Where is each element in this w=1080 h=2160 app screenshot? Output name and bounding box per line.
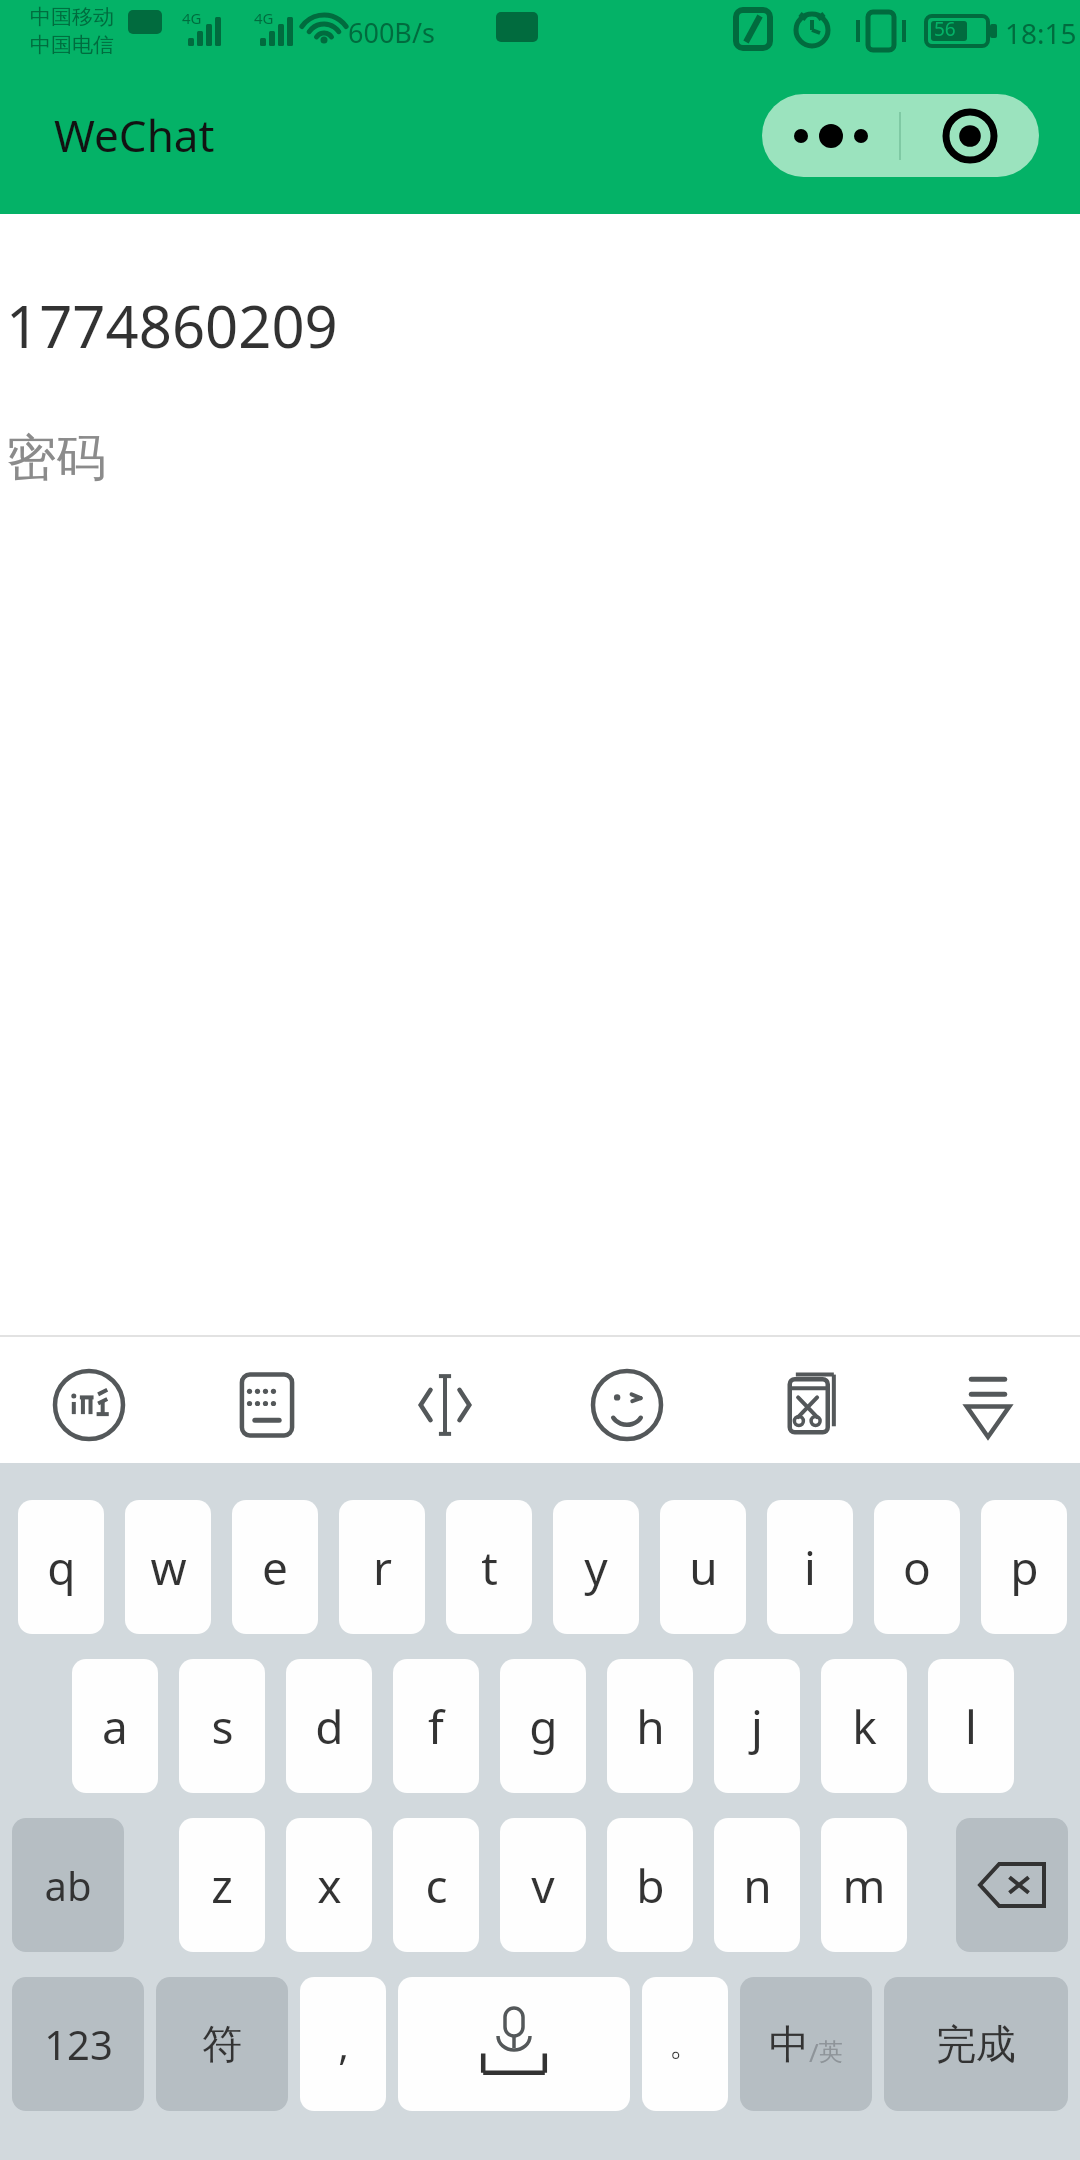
button[interactable]: 。 [642, 1977, 728, 2111]
staticText: l [965, 1695, 977, 1758]
button[interactable]: a [72, 1659, 158, 1793]
staticText: z [211, 1854, 233, 1917]
staticText: h [636, 1695, 665, 1758]
button[interactable]: , [300, 1977, 386, 2111]
button[interactable]: h [607, 1659, 693, 1793]
staticText: j [751, 1695, 763, 1758]
button[interactable]: 中 [740, 1977, 872, 2111]
staticText: WeChat [54, 105, 215, 165]
button[interactable]: 123 [12, 1977, 144, 2111]
staticText: 中 [769, 2019, 809, 2069]
staticText: 密码 [6, 427, 106, 490]
button[interactable]: l [928, 1659, 1014, 1793]
button[interactable]: x [286, 1818, 372, 1952]
button[interactable]: Emoji [571, 1349, 683, 1461]
staticText: k [852, 1695, 877, 1758]
button[interactable]: y [553, 1500, 639, 1634]
staticText: 1774860209 [6, 286, 338, 365]
staticText: x [317, 1854, 342, 1917]
staticText: p [1010, 1536, 1039, 1599]
button[interactable]: n [714, 1818, 800, 1952]
staticText: 123 [44, 2017, 113, 2071]
staticText: 英 [819, 2037, 843, 2067]
staticText: 。 [669, 2024, 701, 2064]
button[interactable]: q [18, 1500, 104, 1634]
button[interactable]: j [714, 1659, 800, 1793]
staticText: 完成 [936, 2019, 1016, 2069]
staticText: 中国电信 [30, 32, 114, 58]
staticText: , [338, 2017, 349, 2071]
staticText: v [531, 1854, 555, 1917]
button[interactable]: o [874, 1500, 960, 1634]
staticText: b [636, 1854, 665, 1917]
button[interactable]: e [232, 1500, 318, 1634]
staticText: 中国移动 [30, 4, 114, 30]
staticText: q [47, 1536, 76, 1599]
staticText: w [150, 1536, 187, 1599]
staticText: i [804, 1536, 816, 1599]
staticText: m [842, 1854, 886, 1917]
staticText: u [689, 1536, 718, 1599]
staticText: 18:15 [1005, 14, 1077, 52]
button[interactable]: i [767, 1500, 853, 1634]
staticText: g [529, 1695, 558, 1758]
button[interactable]: r [339, 1500, 425, 1634]
button[interactable]: w [125, 1500, 211, 1634]
staticText: d [315, 1695, 344, 1758]
button[interactable]: s [179, 1659, 265, 1793]
button[interactable]: Space [398, 1977, 630, 2111]
staticText: c [425, 1854, 448, 1917]
staticText: e [262, 1536, 288, 1599]
button[interactable]: Clipboard [752, 1349, 864, 1461]
button[interactable]: Keyboard layout [211, 1349, 323, 1461]
staticText: ab [44, 1858, 92, 1912]
button[interactable]: t [446, 1500, 532, 1634]
button[interactable]: k [821, 1659, 907, 1793]
staticText: r [373, 1536, 392, 1599]
staticText: y [584, 1536, 608, 1599]
button[interactable]: z [179, 1818, 265, 1952]
staticText: n [743, 1854, 772, 1917]
button[interactable]: v [500, 1818, 586, 1952]
staticText: t [481, 1536, 498, 1599]
staticText: 4G [254, 8, 274, 28]
button[interactable]: ab [12, 1818, 124, 1952]
button[interactable]: Cursor move [389, 1349, 501, 1461]
button[interactable]: b [607, 1818, 693, 1952]
staticText: 600B/s [348, 14, 435, 51]
button[interactable]: Input method [33, 1349, 145, 1461]
button[interactable]: c [393, 1818, 479, 1952]
button[interactable]: m [821, 1818, 907, 1952]
button[interactable]: Mini program menu [762, 94, 1039, 177]
button[interactable]: u [660, 1500, 746, 1634]
button[interactable]: p [981, 1500, 1067, 1634]
button[interactable]: Close [901, 94, 1039, 177]
button[interactable]: d [286, 1659, 372, 1793]
staticText: f [428, 1695, 444, 1758]
staticText: 56 [934, 16, 956, 42]
staticText: o [903, 1536, 931, 1599]
button[interactable]: 符 [156, 1977, 288, 2111]
button[interactable]: f [393, 1659, 479, 1793]
staticText: s [211, 1695, 234, 1758]
staticText: 符 [202, 2019, 242, 2069]
button[interactable]: More [762, 94, 899, 177]
button[interactable]: Backspace [956, 1818, 1068, 1952]
button[interactable]: g [500, 1659, 586, 1793]
button[interactable]: Hide keyboard [932, 1349, 1044, 1461]
button[interactable]: 完成 [884, 1977, 1068, 2111]
staticText: / [809, 2034, 819, 2069]
staticText: 4G [182, 8, 202, 28]
staticText: a [102, 1695, 128, 1758]
